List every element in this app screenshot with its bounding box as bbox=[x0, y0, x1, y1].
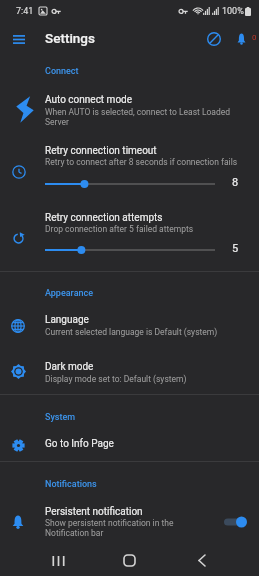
button[interactable]: Disconnect bbox=[198, 23, 230, 55]
button[interactable] bbox=[0, 356, 259, 390]
staticText: Connect bbox=[45, 66, 79, 77]
staticText: Language bbox=[45, 314, 89, 326]
staticText: Appearance bbox=[45, 288, 94, 299]
button[interactable]: Recent apps bbox=[36, 545, 80, 576]
staticText: When AUTO is selected, connect to Least … bbox=[45, 107, 250, 127]
staticText: Show persistent notification in the Noti… bbox=[45, 518, 185, 538]
button[interactable] bbox=[0, 433, 259, 455]
button[interactable]: Back bbox=[180, 545, 224, 576]
button[interactable] bbox=[0, 309, 259, 343]
staticText: 7:41 bbox=[16, 6, 34, 17]
button[interactable] bbox=[0, 207, 259, 241]
staticText: Retry connection timeout bbox=[45, 145, 157, 157]
staticText: Display mode set to: Default (system) bbox=[45, 374, 245, 384]
button[interactable]: Notifications bbox=[231, 23, 259, 55]
button[interactable] bbox=[0, 140, 259, 174]
staticText: Retry connection attempts bbox=[45, 212, 163, 224]
staticText: 5 bbox=[232, 242, 239, 255]
staticText: System bbox=[45, 412, 76, 423]
staticText: Persistent notification bbox=[45, 506, 143, 518]
staticText: Notifications bbox=[45, 479, 97, 490]
staticText: Drop connection after 5 failed attempts bbox=[45, 224, 245, 234]
staticText: 0 bbox=[252, 33, 257, 42]
staticText: 8 bbox=[232, 176, 239, 189]
button[interactable]: Open navigation menu bbox=[3, 23, 35, 55]
staticText: Dark mode bbox=[45, 361, 94, 373]
staticText: Retry to connect after 8 seconds if conn… bbox=[45, 157, 245, 167]
staticText: Go to Info Page bbox=[45, 438, 114, 450]
button[interactable]: Home bbox=[107, 545, 151, 576]
button[interactable]: Toggle persistent notification bbox=[219, 508, 255, 536]
staticText: 100% bbox=[222, 6, 244, 17]
staticText: Settings bbox=[45, 30, 95, 46]
button[interactable] bbox=[0, 89, 259, 123]
staticText: Auto connect mode bbox=[45, 94, 133, 106]
staticText: Current selected language is Default (sy… bbox=[45, 327, 245, 337]
button[interactable] bbox=[0, 501, 259, 535]
